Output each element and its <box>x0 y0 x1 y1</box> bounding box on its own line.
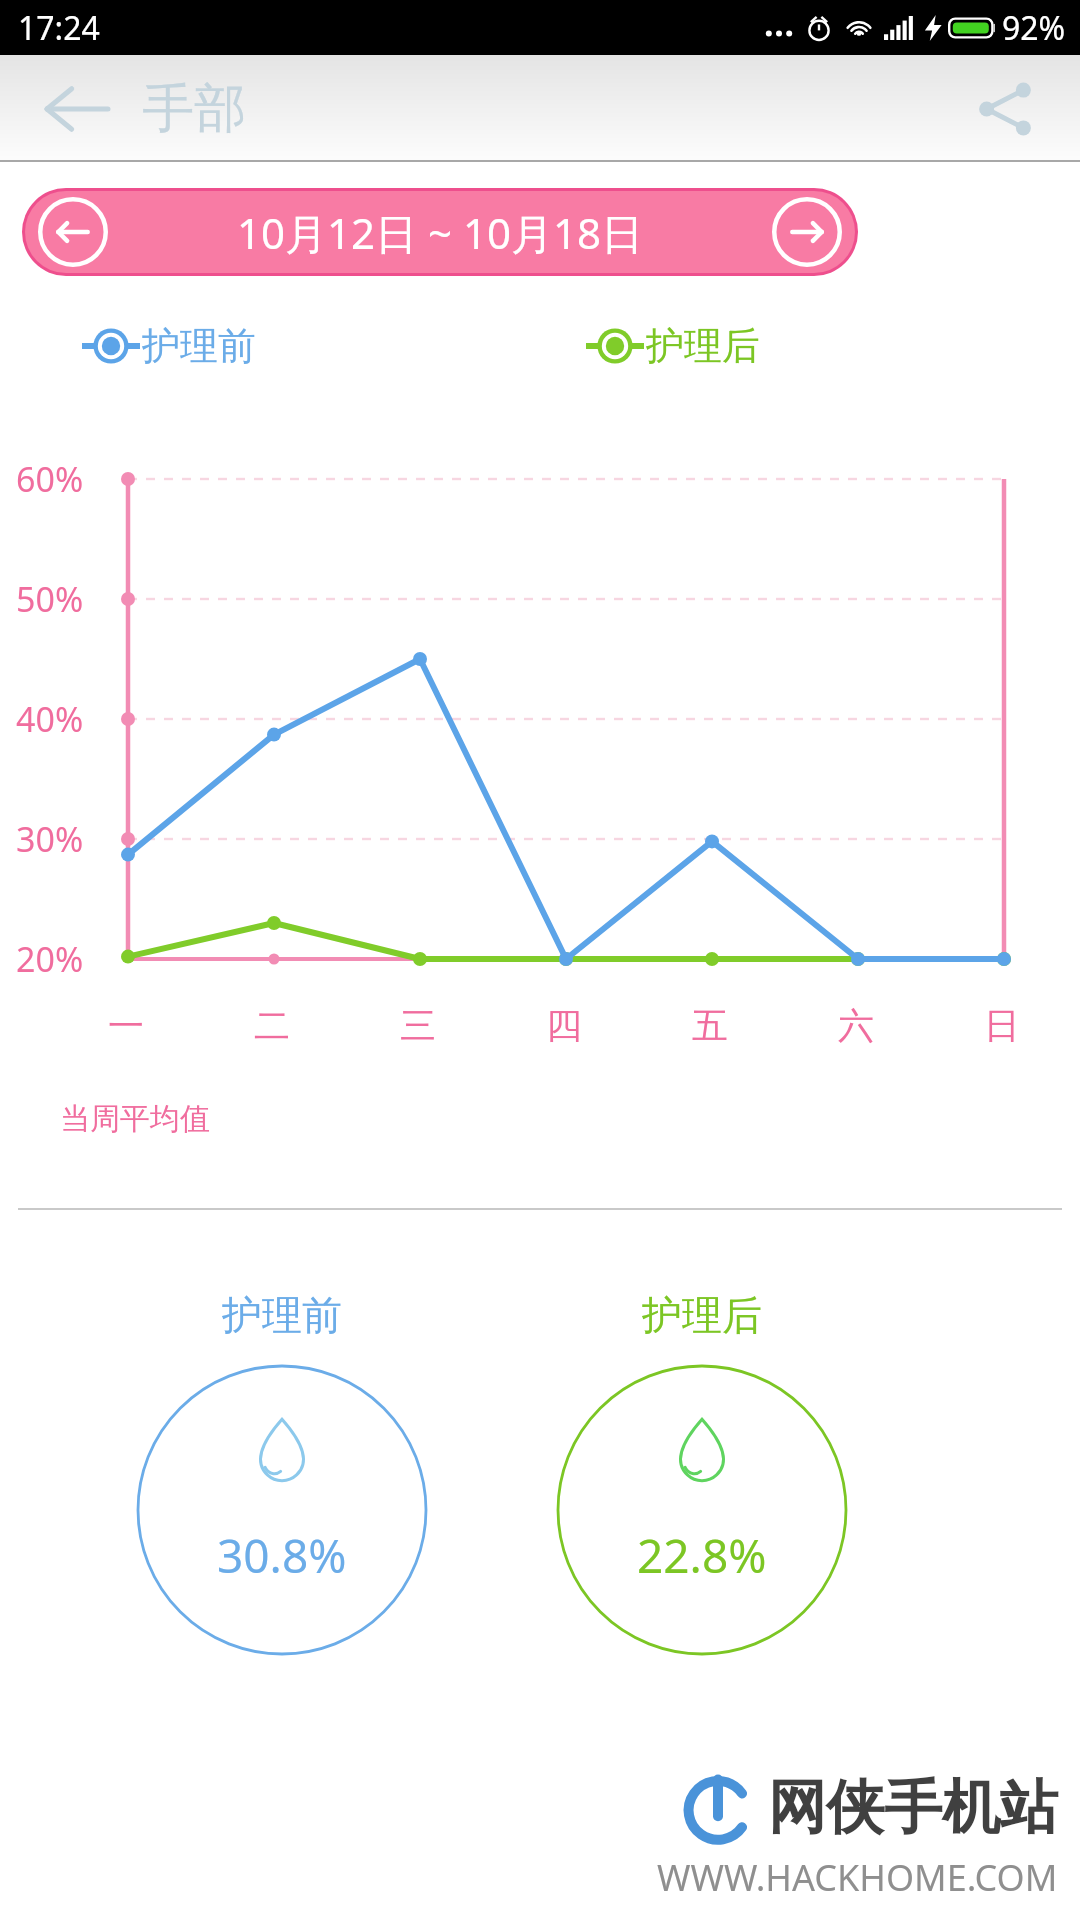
button[interactable]: Previous week <box>37 196 109 268</box>
staticText: 手部 <box>142 76 246 142</box>
staticText: 一 <box>108 1003 144 1048</box>
staticText: 护理前 <box>222 1290 342 1340</box>
staticText: 护理前 <box>142 322 256 370</box>
staticText: 17:24 <box>18 6 100 50</box>
staticText: 三 <box>400 1003 436 1048</box>
staticText: 30.8% <box>217 1524 347 1587</box>
button[interactable]: Share <box>960 64 1050 154</box>
staticText: 六 <box>838 1003 874 1048</box>
staticText: 50% <box>16 576 84 622</box>
staticText: 10月12日 ~ 10月18日 <box>237 204 644 261</box>
staticText: 护理后 <box>642 1290 762 1340</box>
staticText: 二 <box>254 1003 290 1048</box>
staticText: 四 <box>546 1003 582 1048</box>
staticText: 日 <box>984 1003 1020 1048</box>
button[interactable]: Back <box>30 64 120 154</box>
button[interactable]: Next week <box>771 196 843 268</box>
button[interactable]: Previous week <box>25 191 855 273</box>
staticText: 40% <box>16 696 84 742</box>
staticText: 60% <box>16 456 84 502</box>
staticText: 22.8% <box>637 1524 767 1587</box>
staticText: 20% <box>16 936 84 982</box>
staticText: 五 <box>692 1003 728 1048</box>
staticText: 30% <box>16 816 84 862</box>
staticText: WWW.HACKHOME.COM <box>657 1853 1058 1902</box>
staticText: 92% <box>1002 6 1066 50</box>
staticText: 当周平均值 <box>60 1100 210 1138</box>
staticText: 护理后 <box>646 322 760 370</box>
staticText: 网侠手机站 <box>768 1771 1058 1844</box>
